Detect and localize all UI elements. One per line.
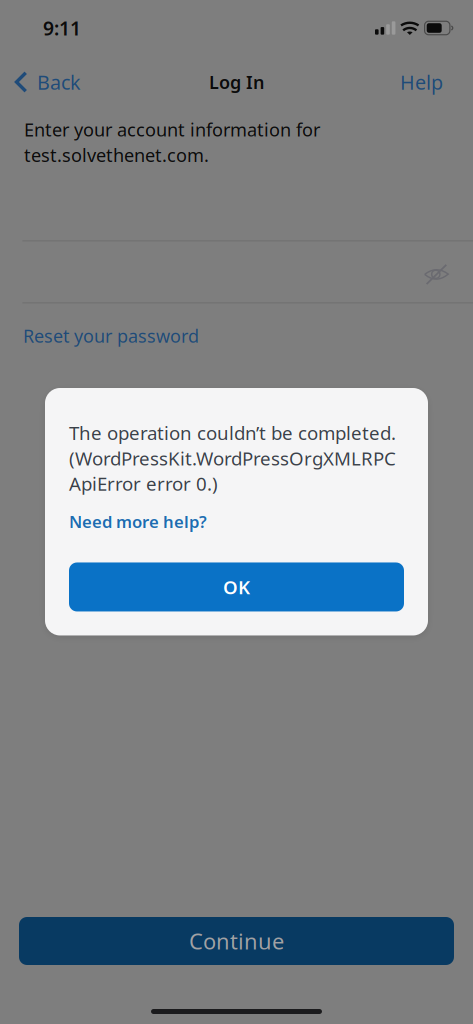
staticText: ApiError error 0.) <box>69 471 218 496</box>
staticText: (WordPressKit.WordPressOrgXMLRPC <box>69 445 396 471</box>
staticText: 9:11 <box>43 15 81 41</box>
staticText: Back <box>37 69 81 95</box>
button[interactable]: Continue <box>19 917 454 965</box>
button[interactable]: Need more help? <box>69 508 207 535</box>
staticText: OK <box>223 574 250 600</box>
staticText: Continue <box>189 926 284 956</box>
staticText: Need more help? <box>69 510 207 533</box>
staticText: test.solvethenet.com. <box>24 143 209 167</box>
staticText: Log In <box>209 70 264 94</box>
button[interactable]: Help <box>388 59 473 105</box>
staticText: The operation couldn’t be completed. <box>69 420 396 445</box>
staticText: Reset your password <box>23 323 199 348</box>
button[interactable]: OK <box>69 562 404 611</box>
button[interactable]: Show password <box>414 252 459 292</box>
staticText: Enter your account information for <box>24 117 320 142</box>
staticText: Help <box>400 69 443 95</box>
button[interactable]: Reset your password <box>0 303 473 358</box>
button[interactable]: Back <box>0 59 93 105</box>
